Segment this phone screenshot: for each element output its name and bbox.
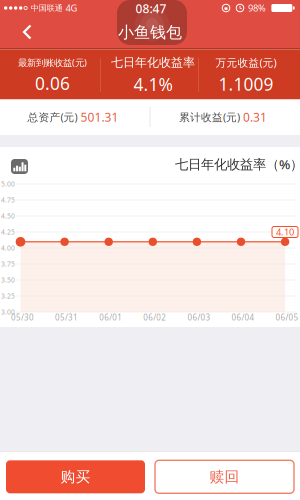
staticText: 05/30 [11,312,34,323]
staticText: 小鱼钱包 [118,23,182,42]
staticText: 4.75 [1,196,15,204]
staticText: 赎回 [209,468,239,486]
staticText: 0.31 [243,109,267,125]
staticText: 中国联通 [31,3,63,13]
staticText: 总资产(元) [27,110,77,124]
staticText: 06/04 [231,312,254,323]
staticText: 4.1% [133,73,172,96]
staticText: 06/02 [143,312,166,323]
staticText: 累计收益(元) [179,110,240,124]
staticText: 4.50 [1,212,15,220]
staticText: 购买 [60,468,90,486]
button[interactable]: AssistiveTouch [117,0,187,45]
staticText: 08:47 [135,0,166,16]
staticText: 最新到账收益(元) [18,56,87,69]
staticText: 1.1009 [218,73,273,96]
staticText: 0.06 [35,72,70,95]
button[interactable]: Back [9,16,33,47]
staticText: 5.00 [1,180,15,188]
button[interactable]: 赎回 [155,460,294,493]
staticText: 3.00 [1,308,15,316]
staticText: 06/05 [276,312,299,323]
button[interactable]: 购买 [6,460,145,493]
staticText: 98% [248,2,266,14]
staticText: 七日年化收益率 [111,55,195,70]
staticText: 501.31 [80,109,118,125]
staticText: 4G [65,2,77,14]
staticText: 4.00 [1,244,15,252]
staticText: 06/03 [187,312,210,323]
staticText: 06/01 [99,312,122,323]
staticText: 万元收益(元) [215,55,276,70]
staticText: 七日年化收益率（%） [175,155,300,173]
staticText: 4.10 [276,226,294,238]
staticText: 4.25 [1,228,15,236]
staticText: 3.25 [1,292,15,300]
staticText: 05/31 [55,312,78,323]
staticText: 3.75 [1,260,15,268]
staticText: 3.50 [1,276,15,284]
